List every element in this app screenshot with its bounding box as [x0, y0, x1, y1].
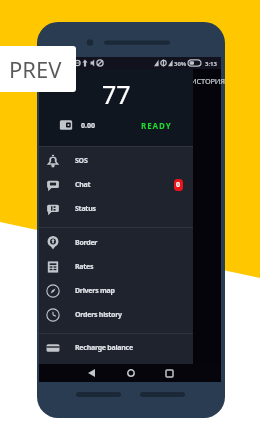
button[interactable]: Chat — [39, 173, 193, 197]
button[interactable]: Drivers map — [39, 279, 193, 303]
button[interactable]: Recent apps — [150, 364, 189, 382]
button[interactable]: Back — [72, 364, 111, 382]
button[interactable]: Orders history — [39, 303, 193, 327]
staticText: SOS — [75, 156, 88, 166]
staticText: 0 — [176, 180, 181, 190]
staticText: Recharge balance — [75, 343, 133, 353]
button[interactable]: Rates — [39, 255, 193, 279]
staticText: Rates — [75, 262, 94, 272]
staticText: 77 — [102, 77, 131, 111]
staticText: 3:13 — [205, 60, 217, 68]
staticText: 30% — [174, 60, 187, 68]
staticText: Chat — [75, 180, 91, 190]
button[interactable]: Status — [39, 197, 193, 221]
button[interactable]: SOS — [39, 149, 193, 173]
button[interactable]: Home — [111, 364, 150, 382]
staticText: Orders history — [75, 310, 122, 320]
staticText: PREV — [9, 54, 62, 84]
staticText: READY — [141, 120, 172, 131]
staticText: ИСТОРИЯ — [191, 76, 225, 86]
button[interactable]: Border — [39, 231, 193, 255]
staticText: Border — [75, 238, 98, 248]
staticText: Status — [75, 204, 96, 214]
staticText: 0.00 — [81, 121, 95, 131]
staticText: Drivers map — [75, 286, 115, 296]
button[interactable]: Recharge balance — [39, 336, 193, 360]
